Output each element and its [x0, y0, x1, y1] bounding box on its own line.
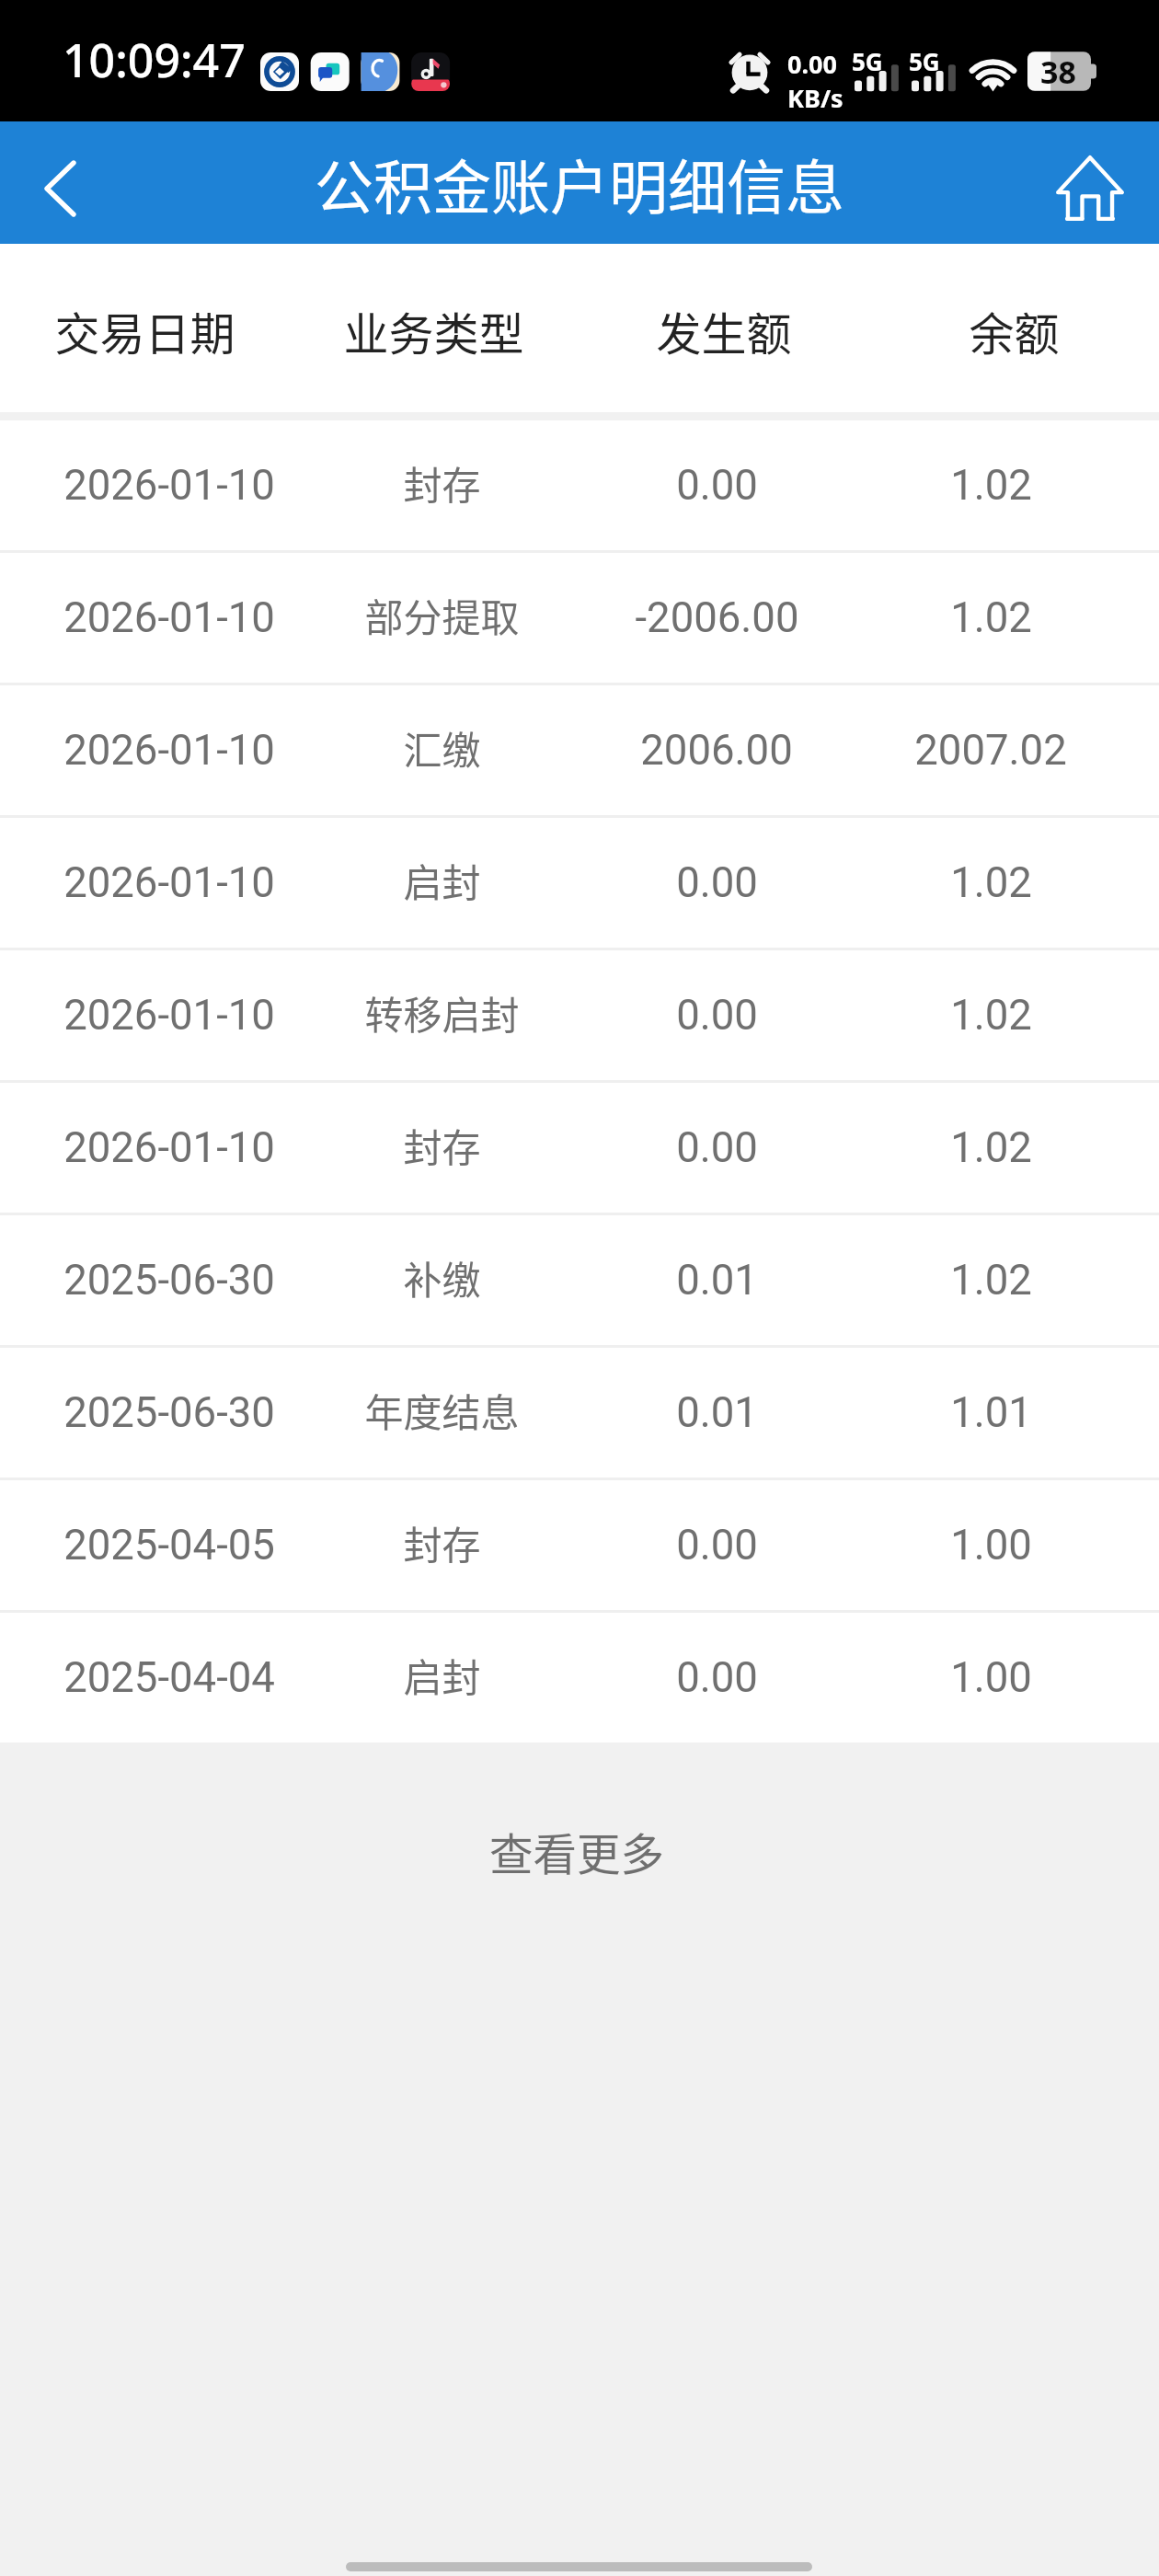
staticText: 1.02	[950, 1256, 1032, 1305]
staticText: 0.01	[676, 1388, 758, 1437]
staticText: 2026-01-10	[63, 858, 275, 907]
button[interactable]: 查看更多	[0, 1742, 1159, 1965]
staticText: 汇缴	[403, 719, 481, 776]
staticText: 1.00	[950, 1521, 1032, 1570]
staticText: 交易日期	[54, 298, 235, 363]
staticText: 38	[1040, 51, 1076, 90]
staticText: 5G	[852, 45, 883, 77]
staticText: 年度结息	[364, 1382, 520, 1438]
staticText: 启封	[403, 1647, 481, 1703]
staticText: 2025-04-05	[63, 1521, 275, 1570]
staticText: 1.02	[950, 991, 1032, 1040]
staticText: 2026-01-10	[63, 991, 275, 1040]
button[interactable]: 2026-01-10	[0, 685, 1159, 815]
staticText: 发生额	[656, 298, 792, 363]
staticText: 转移启封	[364, 984, 520, 1041]
staticText: 5G	[909, 45, 940, 77]
staticText: 0.00	[787, 47, 837, 81]
staticText: 部分提取	[364, 587, 520, 643]
staticText: 余额	[969, 298, 1060, 363]
staticText: 0.00	[676, 858, 758, 907]
staticText: 封存	[403, 454, 481, 511]
staticText: 2026-01-10	[63, 1123, 275, 1172]
button[interactable]: 2025-06-30	[0, 1215, 1159, 1345]
button[interactable]: 2025-06-30	[0, 1348, 1159, 1478]
staticText: 2026-01-10	[63, 593, 275, 642]
staticText: -2006.00	[635, 593, 799, 642]
staticText: KB/s	[787, 81, 843, 115]
button[interactable]: 2026-01-10	[0, 420, 1159, 550]
staticText: 查看更多	[489, 1820, 664, 1883]
staticText: 2025-04-04	[63, 1653, 275, 1702]
staticText: 2025-06-30	[63, 1256, 275, 1305]
staticText: 公积金账户明细信息	[315, 141, 844, 226]
staticText: 1.01	[950, 1388, 1032, 1437]
staticText: 业务类型	[343, 298, 524, 363]
staticText: 2007.02	[914, 726, 1067, 775]
button[interactable]: Home	[1031, 131, 1149, 246]
staticText: 启封	[403, 852, 481, 908]
staticText: 2025-06-30	[63, 1388, 275, 1437]
button[interactable]: 2025-04-04	[0, 1613, 1159, 1742]
button[interactable]: 2026-01-10	[0, 950, 1159, 1080]
button[interactable]: Back	[0, 131, 120, 246]
staticText: 0.00	[676, 461, 758, 510]
staticText: 封存	[403, 1117, 481, 1173]
button[interactable]: 2026-01-10	[0, 1083, 1159, 1213]
staticText: 0.00	[676, 1123, 758, 1172]
button[interactable]: 2025-04-05	[0, 1480, 1159, 1610]
staticText: 1.02	[950, 593, 1032, 642]
staticText: 10:09:47	[63, 29, 246, 91]
staticText: 1.02	[950, 858, 1032, 907]
staticText: 2026-01-10	[63, 726, 275, 775]
staticText: 0.00	[676, 991, 758, 1040]
staticText: 封存	[403, 1514, 481, 1570]
staticText: 0.01	[676, 1256, 758, 1305]
staticText: 2026-01-10	[63, 461, 275, 510]
staticText: 1.02	[950, 1123, 1032, 1172]
staticText: 1.00	[950, 1653, 1032, 1702]
button[interactable]: 2026-01-10	[0, 553, 1159, 683]
staticText: 2006.00	[640, 726, 793, 775]
staticText: 0.00	[676, 1653, 758, 1702]
button[interactable]: 2026-01-10	[0, 818, 1159, 948]
staticText: 补缴	[403, 1249, 481, 1305]
staticText: 0.00	[676, 1521, 758, 1570]
staticText: 1.02	[950, 461, 1032, 510]
